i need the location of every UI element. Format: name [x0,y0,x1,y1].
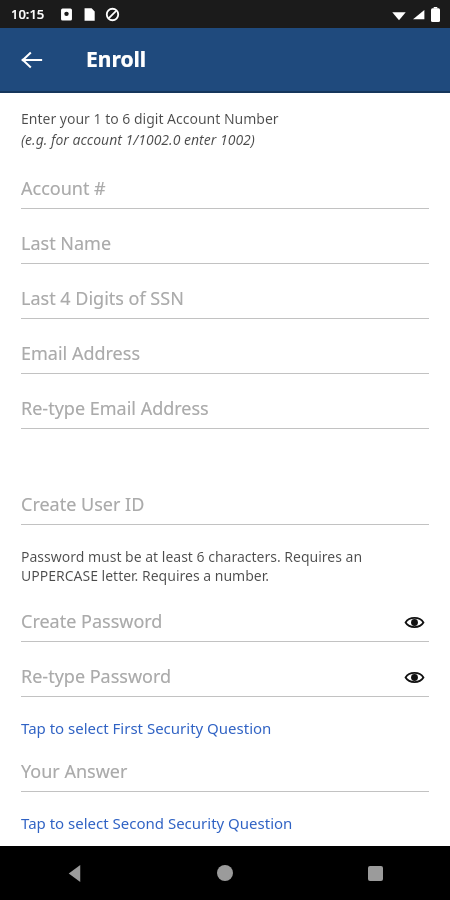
staticText: Last Name [21,231,112,256]
button[interactable]: Show password [399,607,429,637]
button[interactable]: Recent apps [300,846,450,900]
button[interactable]: Account # [21,165,429,209]
staticText: Your Answer [21,759,128,784]
staticText: Enter your 1 to 6 digit Account Number [21,109,279,128]
staticText: Email Address [21,341,141,366]
button[interactable]: Back [8,36,56,84]
staticText: Last 4 Digits of SSN [21,286,184,311]
staticText: Enroll [86,45,147,74]
staticText: Tap to select Second Security Question [21,813,293,833]
staticText: Account # [21,176,106,201]
button[interactable]: Last 4 Digits of SSN [21,275,429,319]
staticText: Re-type Password [21,664,172,689]
button[interactable]: Last Name [21,220,429,264]
button[interactable]: Tap to select First Security Question [21,714,429,742]
button[interactable]: Home [150,846,300,900]
button[interactable]: Email Address [21,330,429,374]
button[interactable]: Your Answer [21,748,429,792]
button[interactable]: Tap to select Second Security Question [21,809,429,837]
button[interactable]: Create User ID [21,481,429,525]
staticText: Tap to select First Security Question [21,718,272,738]
staticText: (e.g. for account 1/1002.0 enter 1002) [21,130,255,149]
button[interactable]: Show password [399,662,429,692]
button[interactable]: Re-type Email Address [21,385,429,429]
staticText: Re-type Email Address [21,396,209,421]
button[interactable]: Re-type Password [21,653,429,697]
staticText: Create User ID [21,492,145,517]
button[interactable]: Back [0,846,150,900]
staticText: 10:15 [11,5,45,23]
staticText: Create Password [21,609,163,634]
staticText: Password must be at least 6 characters. … [21,547,429,585]
button[interactable]: Create Password [21,598,429,642]
staticText: Your Answer [21,845,128,848]
